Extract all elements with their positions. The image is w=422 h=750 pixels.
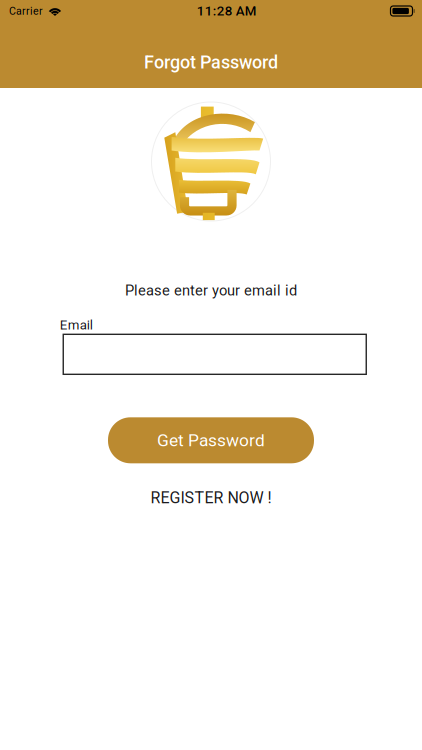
staticText: Get Password [157,430,265,450]
button[interactable]: Get Password [108,417,314,463]
staticText: Forgot Password [144,52,278,73]
staticText: 11:28 AM [197,3,257,19]
staticText: Email [60,317,93,333]
staticText: Carrier [9,5,43,17]
button[interactable]: REGISTER NOW ! [150,488,271,507]
staticText: REGISTER NOW ! [150,488,271,507]
staticText: Please enter your email id [125,282,297,299]
